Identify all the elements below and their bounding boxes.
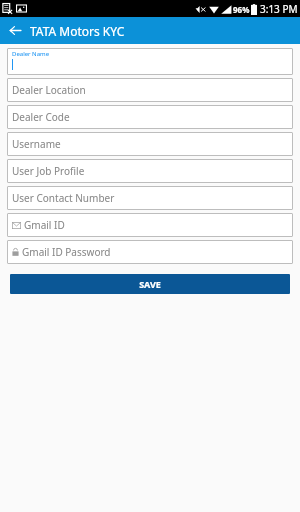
button[interactable]: Gmail ID Password — [7, 240, 293, 264]
button[interactable]: Gmail ID — [7, 213, 293, 237]
staticText: User Job Profile — [12, 164, 85, 178]
staticText: 96% — [233, 4, 250, 15]
staticText: SAVE — [139, 278, 161, 290]
button[interactable]: SAVE — [10, 274, 290, 294]
button[interactable]: Dealer Location — [7, 78, 293, 102]
staticText: Gmail ID — [24, 218, 65, 232]
staticText: Username — [12, 137, 61, 151]
staticText: 3:13 PM — [260, 2, 298, 16]
staticText: Dealer Code — [12, 110, 70, 124]
staticText: Dealer Name — [12, 50, 50, 58]
button[interactable]: Back — [0, 17, 30, 44]
staticText: TATA Motors KYC — [30, 23, 125, 39]
button[interactable]: User Job Profile — [7, 159, 293, 183]
staticText: User Contact Number — [12, 191, 115, 205]
staticText: Dealer Location — [12, 83, 86, 97]
button[interactable]: User Contact Number — [7, 186, 293, 210]
staticText: Gmail ID Password — [22, 245, 111, 259]
button[interactable]: Dealer Name — [7, 48, 293, 75]
button[interactable]: Dealer Code — [7, 105, 293, 129]
button[interactable]: Username — [7, 132, 293, 156]
